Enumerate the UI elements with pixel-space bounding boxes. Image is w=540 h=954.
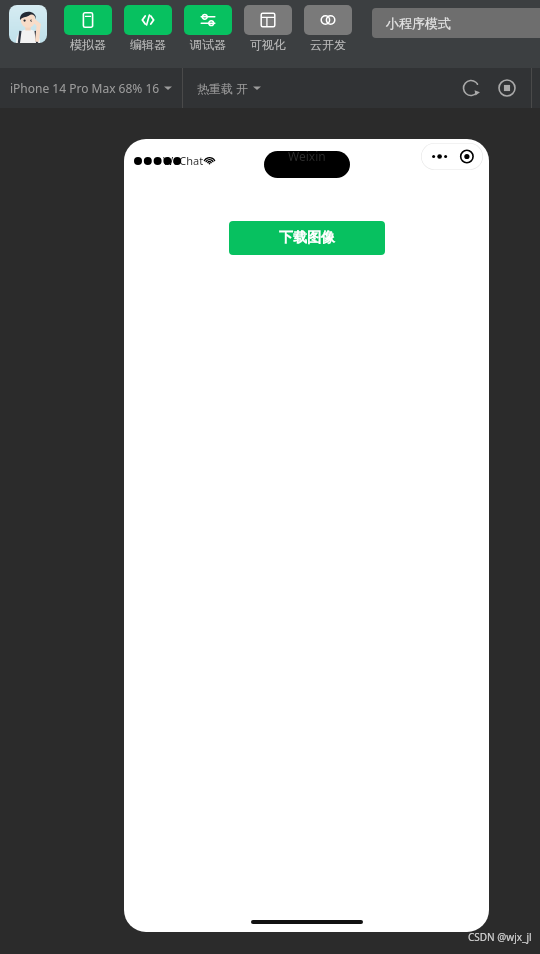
staticText: 调试器 — [190, 37, 226, 52]
button[interactable]: 小程序模式 — [372, 8, 540, 38]
button[interactable]: Refresh — [453, 70, 489, 106]
button[interactable]: iPhone 14 Pro Max 68% 16 — [0, 80, 182, 96]
button[interactable]: 下载图像 — [229, 221, 385, 255]
staticText: WeChat — [163, 153, 204, 168]
staticText: Weixin — [288, 148, 326, 164]
button[interactable]: 可视化 — [240, 5, 296, 52]
staticText: 热重载 开 — [197, 80, 249, 96]
staticText: 90% — [436, 153, 456, 167]
staticText: CSDN @wjx_jl — [468, 930, 532, 944]
button[interactable]: Menu capsule — [421, 143, 483, 170]
staticText: 小程序模式 — [386, 15, 451, 31]
staticText: 可视化 — [250, 37, 286, 52]
button[interactable]: 云开发 — [300, 5, 356, 52]
button[interactable]: 热重载 开 — [183, 80, 271, 96]
staticText: 模拟器 — [70, 37, 106, 52]
staticText: iPhone 14 Pro Max 68% 16 — [10, 80, 160, 96]
staticText: 下载图像 — [279, 229, 335, 247]
button[interactable]: 模拟器 — [60, 5, 116, 52]
staticText: 云开发 — [310, 37, 346, 52]
button[interactable]: 调试器 — [180, 5, 236, 52]
staticText: 编辑器 — [130, 37, 166, 52]
button[interactable]: Account avatar — [9, 5, 47, 43]
button[interactable]: 编辑器 — [120, 5, 176, 52]
button[interactable]: Stop — [489, 70, 525, 106]
